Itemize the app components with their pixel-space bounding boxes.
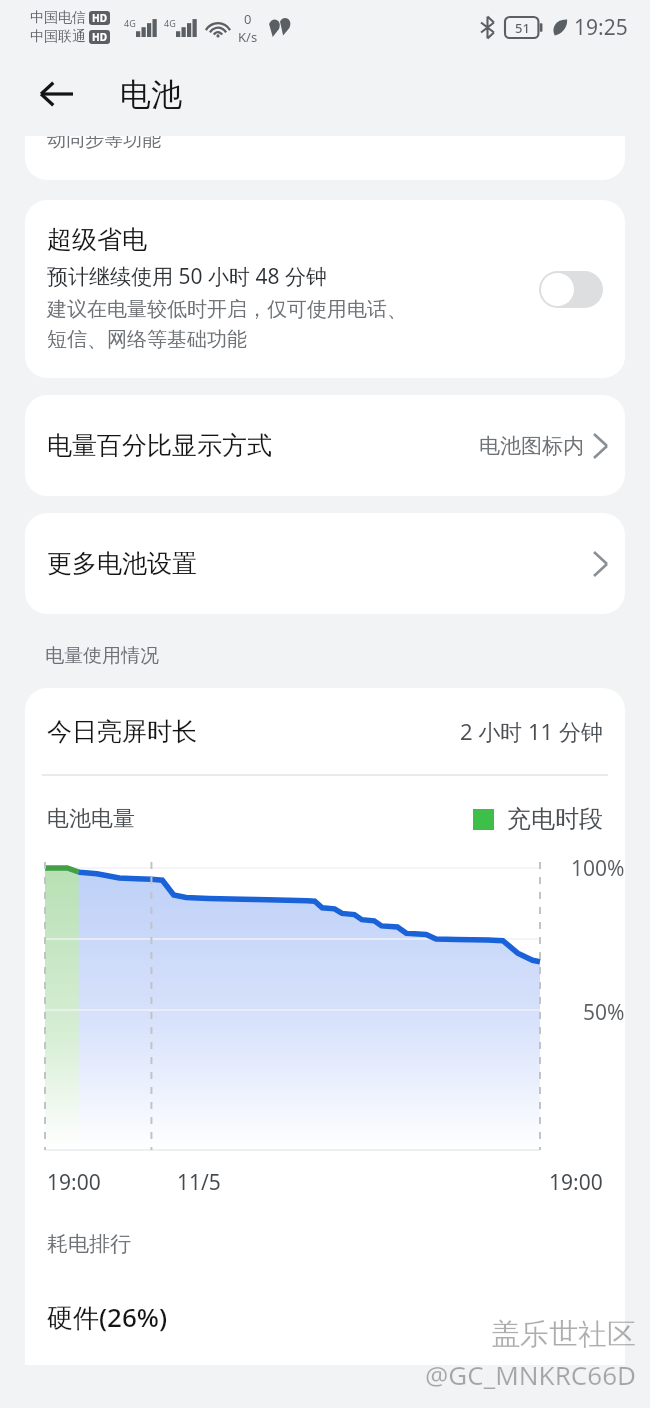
staticText: 19:00	[47, 1168, 101, 1197]
staticText: 超级省电	[47, 224, 147, 255]
staticText: 电池	[120, 75, 182, 114]
staticText: 动同步等功能	[47, 136, 161, 152]
staticText: 2 小时 11 分钟	[460, 716, 603, 746]
staticText: 4G	[164, 17, 176, 29]
staticText: 4G	[124, 17, 136, 29]
staticText: 19:25	[574, 13, 628, 42]
staticText: 50%	[583, 998, 625, 1027]
button[interactable]: Back	[30, 68, 82, 120]
button[interactable]: 电量百分比显示方式	[25, 395, 625, 496]
staticText: 耗电排行	[47, 1231, 131, 1257]
staticText: 中国联通	[30, 28, 86, 46]
staticText: 盖乐世社区	[491, 1316, 636, 1353]
staticText: 充电时段	[507, 804, 603, 834]
button[interactable]: 超级省电	[25, 200, 625, 378]
staticText: 0	[244, 10, 252, 28]
staticText: 100%	[571, 854, 625, 883]
staticText: HD	[92, 30, 107, 44]
staticText: 11/5	[177, 1168, 221, 1197]
button[interactable]: Super power saving toggle	[539, 271, 603, 308]
staticText: HD	[92, 11, 107, 25]
staticText: 硬件(26%)	[47, 1299, 168, 1335]
staticText: 电池电量	[47, 805, 135, 833]
staticText: 预计继续使用 50 小时 48 分钟	[47, 262, 327, 291]
staticText: 电量百分比显示方式	[47, 430, 272, 461]
button[interactable]: 更多电池设置	[25, 513, 625, 614]
staticText: 电量使用情况	[45, 644, 159, 668]
staticText: 19:00	[549, 1168, 603, 1197]
staticText: 今日亮屏时长	[47, 716, 197, 747]
button[interactable]: 动同步等功能	[25, 136, 625, 180]
staticText: 建议在电量较低时开启，仅可使用电话、 短信、网络等基础功能	[47, 297, 407, 352]
staticText: 51	[515, 19, 530, 37]
staticText: 中国电信	[30, 9, 86, 27]
staticText: K/s	[238, 28, 258, 46]
staticText: 更多电池设置	[47, 548, 197, 579]
staticText: @GC_MNKRC66D	[424, 1357, 636, 1392]
staticText: 电池图标内	[479, 433, 584, 459]
button[interactable]: 今日亮屏时长	[25, 688, 625, 774]
